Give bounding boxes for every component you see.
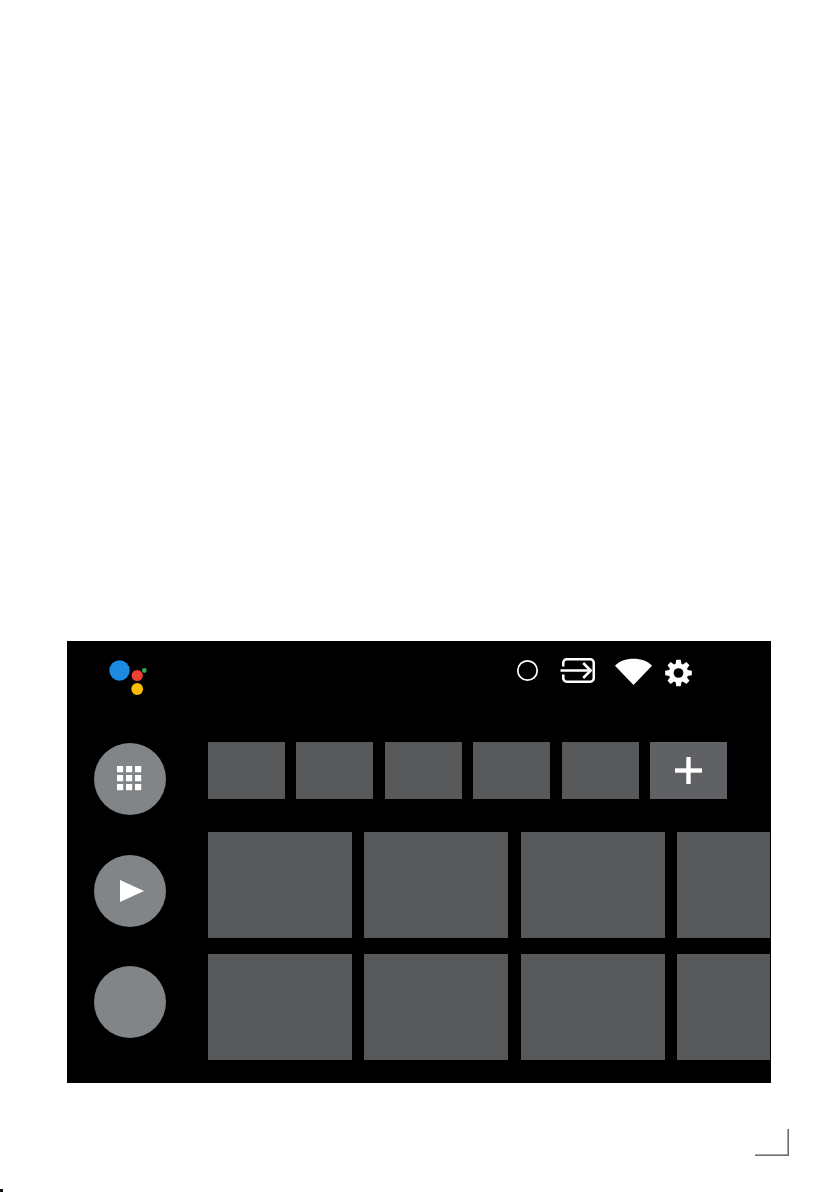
button[interactable]: Account [507, 650, 547, 690]
button[interactable]: Play Next [94, 855, 166, 927]
button[interactable]: Apps [94, 743, 166, 815]
button[interactable]: Inputs [557, 650, 599, 690]
button[interactable]: Add app [650, 742, 727, 799]
button[interactable]: Settings [658, 653, 698, 693]
button[interactable]: Wi-Fi [609, 651, 657, 691]
button[interactable]: Channel [94, 966, 166, 1038]
